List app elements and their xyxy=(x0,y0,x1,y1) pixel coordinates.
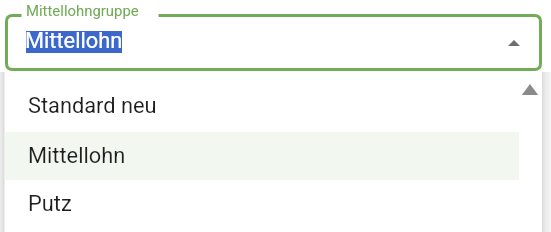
staticText: Mittellohngruppe xyxy=(26,2,139,19)
other: Scroll up xyxy=(523,85,537,95)
staticText: Standard neu xyxy=(28,93,157,119)
staticText: Mittellohn xyxy=(28,143,126,169)
button[interactable]: Collapse dropdown xyxy=(503,32,525,54)
button[interactable]: Mittellohngruppe xyxy=(26,2,139,19)
button[interactable]: Mittellohn xyxy=(5,132,542,180)
button[interactable]: Putz xyxy=(5,180,542,228)
staticText: Putz xyxy=(28,191,72,217)
button[interactable]: Mittellohn xyxy=(5,14,542,71)
button[interactable]: Standard neu xyxy=(5,82,542,130)
staticText: Mittellohn xyxy=(25,28,123,54)
